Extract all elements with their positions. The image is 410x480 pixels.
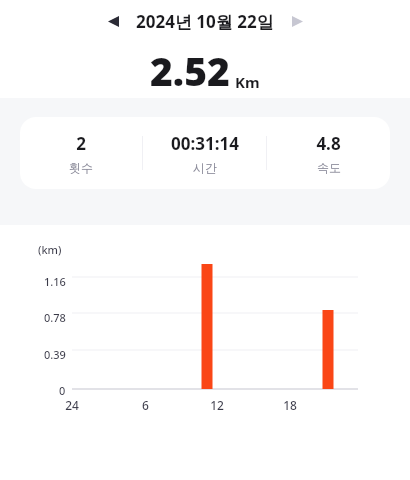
staticText: (km) [38, 242, 62, 257]
button[interactable]: 2 [20, 117, 142, 189]
button[interactable]: 4.8 [267, 117, 390, 189]
staticText: 0 [59, 383, 66, 398]
staticText: 0.39 [44, 347, 66, 362]
staticText: 18 [283, 397, 297, 413]
staticText: 속도 [317, 160, 341, 175]
staticText: 2.52 [150, 44, 230, 97]
button[interactable]: 00:31:14 [143, 117, 266, 189]
staticText: 2024년 10월 22일 [136, 10, 274, 33]
staticText: 1.16 [44, 274, 66, 289]
button[interactable]: Next day [280, 4, 314, 38]
staticText: 시간 [193, 160, 217, 175]
staticText: 24 [65, 397, 79, 413]
staticText: 횟수 [69, 160, 93, 175]
staticText: 2 [76, 132, 86, 155]
staticText: 12 [210, 397, 224, 413]
button[interactable]: Previous day [96, 4, 130, 38]
staticText: 00:31:14 [171, 132, 239, 155]
staticText: 0.78 [44, 310, 66, 325]
staticText: 6 [142, 397, 149, 413]
staticText: Km [235, 72, 260, 92]
staticText: 4.8 [316, 132, 341, 155]
